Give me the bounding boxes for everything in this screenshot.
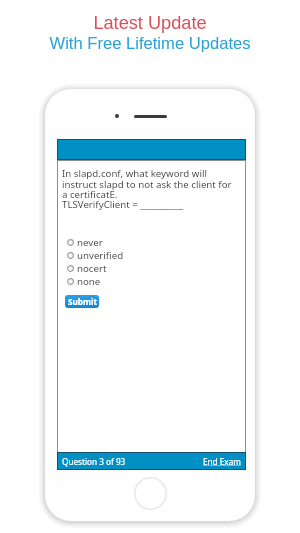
staticText: none bbox=[77, 275, 101, 288]
staticText: nocert bbox=[77, 262, 107, 275]
staticText: With Free Lifetime Updates bbox=[49, 34, 251, 53]
button[interactable]: End Exam bbox=[203, 456, 241, 467]
button[interactable]: none bbox=[57, 275, 246, 288]
staticText: Submit bbox=[68, 296, 97, 307]
staticText: unverified bbox=[77, 249, 124, 262]
staticText: In slapd.conf, what keyword will instruc… bbox=[62, 167, 232, 211]
button[interactable]: never bbox=[57, 236, 246, 249]
staticText: never bbox=[77, 236, 103, 249]
button[interactable]: unverified bbox=[57, 249, 246, 262]
staticText: Latest Update bbox=[93, 13, 207, 33]
staticText: Question 3 of 93 bbox=[62, 456, 126, 467]
button[interactable]: Submit bbox=[65, 295, 99, 308]
button[interactable]: Question 3 of 93 bbox=[62, 456, 126, 467]
button[interactable]: nocert bbox=[57, 262, 246, 275]
staticText: End Exam bbox=[203, 456, 241, 467]
